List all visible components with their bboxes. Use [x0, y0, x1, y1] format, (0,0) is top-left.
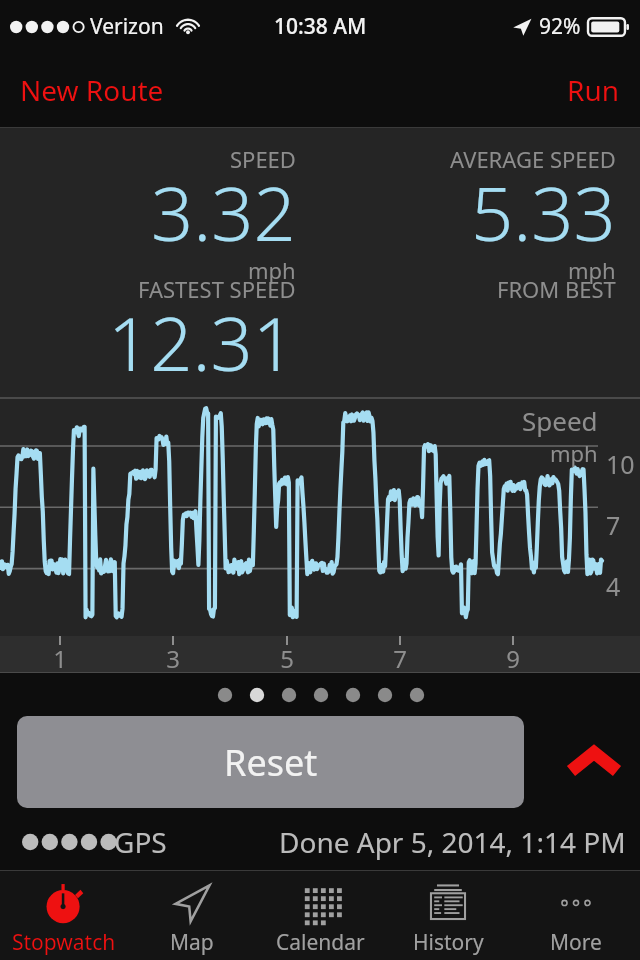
button[interactable]: Reset [17, 716, 524, 808]
staticText: 7 [390, 642, 410, 675]
staticText: 10:38 AM [274, 12, 367, 41]
button[interactable]: New Route [0, 65, 176, 115]
staticText: Run [567, 71, 620, 109]
staticText: History [413, 928, 484, 957]
staticText: 7 [606, 508, 640, 542]
staticText: 4 [606, 569, 640, 603]
staticText: 3 [163, 642, 183, 675]
staticText: Reset [224, 738, 318, 787]
staticText: 92% [539, 12, 581, 41]
staticText: More [550, 928, 602, 957]
staticText: 1 [50, 642, 70, 675]
button[interactable]: Stopwatch [0, 871, 128, 960]
staticText: mph [248, 255, 296, 285]
staticText: FROM BEST [497, 274, 616, 304]
staticText: Speed [522, 403, 598, 438]
staticText: 12.31 [108, 292, 296, 387]
button[interactable]: Expand [560, 728, 628, 796]
staticText: 9 [503, 642, 523, 675]
staticText: SPEED [230, 144, 296, 174]
staticText: AVERAGE SPEED [450, 144, 616, 174]
button[interactable]: More [512, 871, 640, 960]
staticText: FASTEST SPEED [138, 274, 296, 304]
staticText: 3.32 [151, 162, 296, 263]
staticText: 10 [606, 447, 640, 481]
staticText: Verizon [90, 12, 164, 41]
staticText: Stopwatch [12, 928, 116, 957]
staticText: GPS [114, 823, 167, 861]
staticText: mph [550, 438, 598, 468]
staticText: 5 [277, 642, 297, 675]
button[interactable]: History [384, 871, 512, 960]
staticText: mph [568, 255, 616, 285]
button[interactable]: Run [555, 65, 640, 115]
button[interactable]: Map [128, 871, 256, 960]
staticText: Calendar [276, 928, 365, 957]
staticText: New Route [20, 71, 164, 109]
staticText: Done Apr 5, 2014, 1:14 PM [279, 823, 626, 861]
button[interactable]: Calendar [256, 871, 384, 960]
staticText: 5.33 [471, 162, 616, 263]
staticText: Map [170, 928, 214, 957]
